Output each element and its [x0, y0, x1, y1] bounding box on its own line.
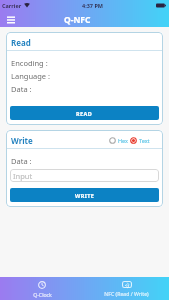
staticText: Data :: [11, 156, 32, 166]
button[interactable]: Text: [130, 137, 150, 144]
staticText: Q-NFC: [64, 14, 91, 26]
button[interactable]: WRITE: [10, 188, 159, 202]
staticText: Text: [139, 137, 150, 144]
button[interactable]: Open navigation menu: [3, 12, 18, 27]
button[interactable]: READ: [10, 106, 159, 120]
staticText: Encoding :: [11, 58, 48, 68]
staticText: Input: [13, 171, 33, 181]
staticText: WRITE: [75, 192, 95, 199]
staticText: Carrier: [2, 2, 22, 9]
staticText: NFC (Read / Write): [104, 290, 149, 297]
staticText: Data :: [11, 84, 32, 94]
staticText: Q-Clock: [33, 291, 52, 298]
staticText: READ: [76, 110, 93, 117]
staticText: Write: [11, 135, 33, 146]
staticText: Hex: [118, 137, 128, 144]
button[interactable]: Q-Clock: [0, 277, 84, 300]
staticText: Read: [11, 37, 31, 48]
button[interactable]: NFC (Read / Write): [84, 277, 169, 300]
staticText: Language :: [11, 71, 51, 81]
staticText: 4:37 PM: [82, 2, 104, 9]
button[interactable]: Input: [10, 169, 159, 182]
button[interactable]: Hex: [109, 137, 128, 144]
